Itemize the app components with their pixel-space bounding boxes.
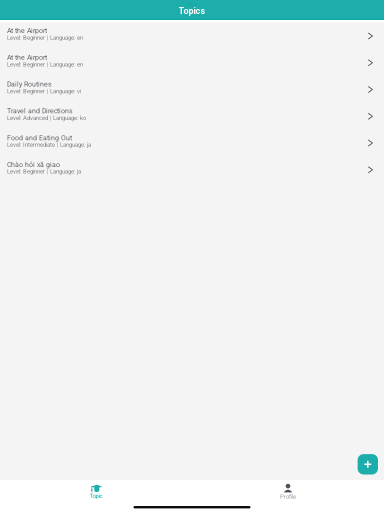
- button[interactable]: Add topic: [358, 454, 378, 474]
- staticText: Travel and Directions: [7, 107, 72, 115]
- staticText: At the Airport: [7, 27, 47, 35]
- staticText: Daily Routines: [7, 80, 51, 88]
- staticText: Topic: [89, 493, 102, 499]
- button[interactable]: At the Airport: [0, 23, 384, 49]
- staticText: Level: Intermediate | Language: ja: [7, 141, 91, 148]
- staticText: Chào hỏi xã giao: [7, 161, 60, 168]
- staticText: Food and Eating Out: [7, 134, 72, 142]
- button[interactable]: Daily Routines: [0, 76, 384, 103]
- button[interactable]: Chào hỏi xã giao: [0, 156, 384, 183]
- staticText: Topics: [178, 5, 205, 16]
- staticText: Level: Beginner | Language: en: [7, 34, 83, 41]
- staticText: Level: Beginner | Language: en: [7, 61, 83, 68]
- staticText: Profile: [280, 493, 296, 500]
- button[interactable]: Food and Eating Out: [0, 130, 384, 156]
- staticText: Level: Beginner | Language: ja: [7, 168, 81, 175]
- button[interactable]: Travel and Directions: [0, 103, 384, 130]
- button[interactable]: Profile: [192, 480, 384, 502]
- staticText: Level: Beginner | Language: vi: [7, 87, 81, 95]
- staticText: At the Airport: [7, 54, 47, 61]
- button[interactable]: At the Airport: [0, 49, 384, 76]
- staticText: Level: Advanced | Language: ko: [7, 114, 86, 121]
- button[interactable]: Topic: [0, 480, 192, 502]
